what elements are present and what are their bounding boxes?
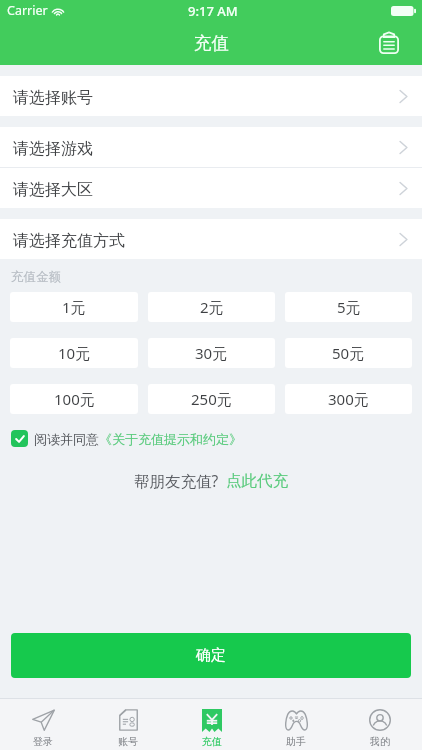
- staticText: 请选择充值方式: [13, 231, 125, 251]
- staticText: 确定: [196, 646, 226, 665]
- button[interactable]: 2元: [148, 292, 275, 322]
- staticText: 250元: [191, 389, 232, 409]
- staticText: 《关于充值提示和约定》: [99, 431, 242, 447]
- staticText: 点此代充: [226, 471, 288, 491]
- staticText: 阅读并同意: [34, 431, 99, 447]
- staticText: Carrier: [7, 2, 48, 19]
- button[interactable]: 30元: [148, 338, 275, 368]
- staticText: 充值: [194, 32, 229, 54]
- staticText: 1元: [62, 297, 86, 317]
- button[interactable]: 5元: [285, 292, 412, 322]
- staticText: 50元: [332, 343, 365, 363]
- staticText: 请选择大区: [13, 180, 93, 200]
- button[interactable]: 300元: [285, 384, 412, 414]
- staticText: 请选择游戏: [13, 139, 93, 159]
- button[interactable]: 请选择大区: [0, 168, 422, 208]
- button[interactable]: 请选择充值方式: [0, 219, 422, 259]
- button[interactable]: Recharge records: [372, 26, 406, 60]
- staticText: 100元: [54, 389, 95, 409]
- staticText: 9:17 AM: [188, 2, 238, 20]
- staticText: 账号: [118, 735, 138, 748]
- staticText: 我的: [370, 735, 390, 748]
- staticText: 充值金额: [11, 269, 61, 285]
- button[interactable]: 助手: [254, 699, 338, 750]
- button[interactable]: 我的: [338, 699, 422, 750]
- button[interactable]: 确定: [11, 633, 411, 678]
- button[interactable]: 100元: [10, 384, 138, 414]
- button[interactable]: 请选择游戏: [0, 127, 422, 167]
- staticText: 请选择账号: [13, 88, 93, 108]
- staticText: 助手: [286, 735, 306, 748]
- button[interactable]: 阅读并同意: [11, 430, 422, 447]
- button[interactable]: 点此代充: [226, 471, 288, 491]
- staticText: 300元: [328, 389, 369, 409]
- staticText: 帮朋友充值?: [134, 470, 219, 491]
- button[interactable]: 250元: [148, 384, 275, 414]
- staticText: 登录: [33, 735, 53, 748]
- staticText: 充值: [202, 735, 222, 748]
- staticText: 5元: [337, 297, 361, 317]
- button[interactable]: 50元: [285, 338, 412, 368]
- button[interactable]: 充值: [170, 699, 254, 750]
- staticText: 2元: [200, 297, 224, 317]
- button[interactable]: 请选择账号: [0, 76, 422, 116]
- button[interactable]: 登录: [0, 699, 85, 750]
- staticText: 10元: [58, 343, 91, 363]
- staticText: 30元: [195, 343, 228, 363]
- button[interactable]: 10元: [10, 338, 138, 368]
- button[interactable]: 1元: [10, 292, 138, 322]
- button[interactable]: 账号: [85, 699, 170, 750]
